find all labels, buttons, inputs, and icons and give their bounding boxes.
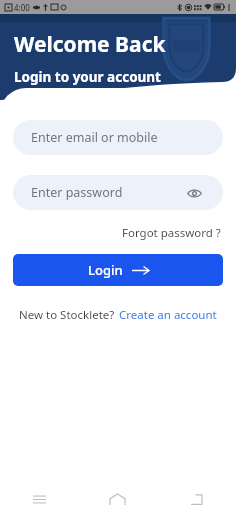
button[interactable]: Enter password (13, 175, 223, 210)
staticText: 4:00 (14, 2, 30, 13)
staticText: Login (88, 261, 123, 279)
staticText: Forgot password ? (122, 225, 221, 241)
button[interactable]: Create an account (119, 304, 217, 326)
button[interactable]: Forgot password ? (120, 222, 223, 244)
button[interactable]: Show password (183, 182, 205, 204)
button[interactable]: Recent apps (0, 486, 78, 512)
staticText: Login to your account (14, 68, 161, 86)
button[interactable]: Login (13, 254, 223, 286)
staticText: Create an account (119, 307, 217, 323)
staticText: Enter email or mobile (31, 129, 158, 146)
staticText: New to Stocklete? (19, 307, 115, 323)
button[interactable]: Home (78, 486, 157, 512)
staticText: Welcome Back (14, 30, 166, 59)
button[interactable]: Enter email or mobile (13, 120, 223, 155)
staticText: Enter password (31, 184, 123, 201)
button[interactable]: Back (157, 486, 236, 512)
